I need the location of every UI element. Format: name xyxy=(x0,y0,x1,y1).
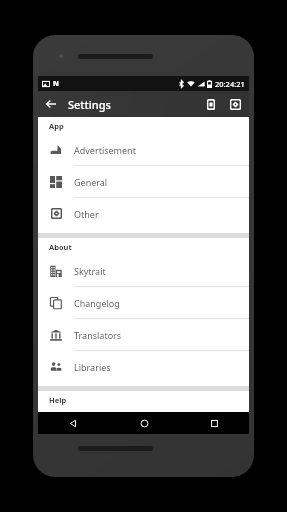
staticText: N xyxy=(53,79,59,89)
staticText: Advertisement xyxy=(74,144,136,156)
button[interactable]: Libraries xyxy=(38,351,249,382)
button[interactable]: General xyxy=(38,166,249,197)
staticText: Skytrait xyxy=(74,265,106,277)
staticText: Translators xyxy=(74,329,122,341)
staticText: About xyxy=(49,242,72,252)
staticText: Libraries xyxy=(74,361,111,373)
button[interactable]: Back xyxy=(38,91,64,117)
button[interactable]: Translators xyxy=(38,319,249,350)
button[interactable]: Other xyxy=(38,198,249,229)
staticText: General xyxy=(74,176,108,188)
button[interactable]: Advertisement xyxy=(38,134,249,165)
staticText: Settings xyxy=(68,97,111,112)
staticText: 20:24:21 xyxy=(215,79,245,89)
staticText: App xyxy=(49,121,64,131)
button[interactable]: Skytrait xyxy=(38,255,249,286)
button[interactable]: Device xyxy=(199,92,223,116)
staticText: Changelog xyxy=(74,297,120,309)
staticText: Other xyxy=(74,208,99,220)
button[interactable]: Home xyxy=(109,412,179,434)
staticText: Help xyxy=(49,395,67,405)
button[interactable]: Recents xyxy=(179,412,249,434)
button[interactable]: Back xyxy=(38,412,109,434)
button[interactable]: Changelog xyxy=(38,287,249,318)
button[interactable]: Settings options xyxy=(223,92,247,116)
